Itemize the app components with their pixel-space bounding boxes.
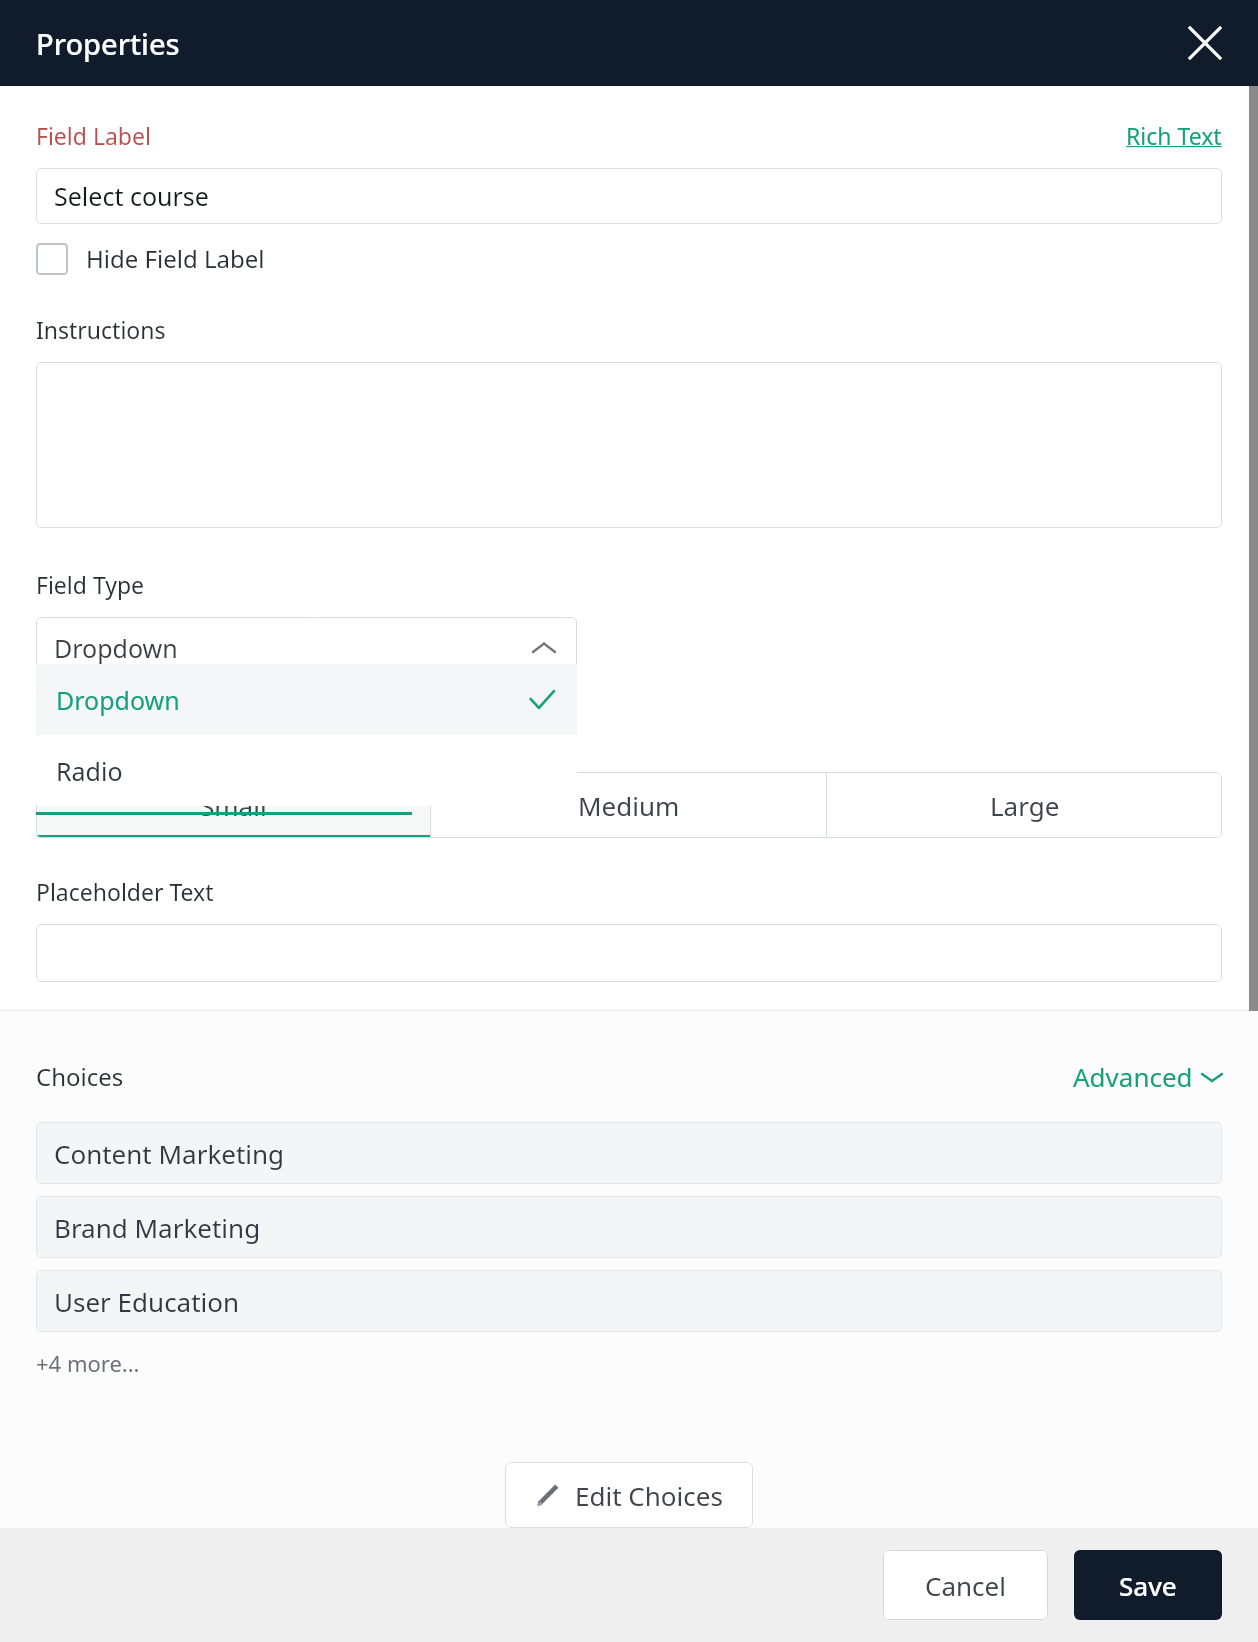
button[interactable]: Small xyxy=(36,772,430,838)
staticText: +4 more... xyxy=(36,1348,140,1378)
staticText: Dropdown xyxy=(56,683,180,717)
button[interactable] xyxy=(36,924,1222,982)
staticText: Placeholder Text xyxy=(36,876,214,907)
button[interactable]: Close xyxy=(1178,16,1232,70)
button[interactable]: User Education xyxy=(36,1270,1222,1332)
staticText: Instructions xyxy=(36,314,166,345)
staticText: Choices xyxy=(36,1060,124,1093)
staticText: Medium xyxy=(578,788,680,823)
staticText: Content Marketing xyxy=(54,1136,285,1171)
button[interactable]: Rich Text xyxy=(1126,120,1222,151)
button[interactable]: Radio xyxy=(36,735,577,806)
button[interactable]: Brand Marketing xyxy=(36,1196,1222,1258)
staticText: Rich Text xyxy=(1126,120,1222,151)
staticText: Save xyxy=(1119,1568,1177,1603)
staticText: Advanced xyxy=(1073,1059,1193,1094)
staticText: Field Label xyxy=(36,120,151,151)
staticText: Properties xyxy=(36,24,180,63)
button[interactable]: Hide Field Label xyxy=(36,242,265,275)
staticText: Select course xyxy=(54,179,209,213)
button[interactable]: Select course xyxy=(36,168,1222,224)
button[interactable]: Medium xyxy=(431,772,826,838)
staticText: Cancel xyxy=(925,1568,1006,1603)
button[interactable] xyxy=(36,362,1222,528)
staticText: Large xyxy=(990,788,1060,823)
button[interactable]: Content Marketing xyxy=(36,1122,1222,1184)
button[interactable]: Edit Choices xyxy=(505,1462,753,1528)
button[interactable]: Large xyxy=(827,772,1222,838)
staticText: Field Type xyxy=(36,569,145,600)
staticText: Radio xyxy=(56,754,123,788)
staticText: Brand Marketing xyxy=(54,1210,261,1245)
button[interactable]: Advanced xyxy=(1073,1059,1222,1094)
staticText: User Education xyxy=(54,1284,240,1319)
staticText: Edit Choices xyxy=(575,1478,723,1513)
staticText: Dropdown xyxy=(54,631,178,665)
button[interactable]: Dropdown xyxy=(36,664,577,735)
button[interactable]: Dropdown xyxy=(36,617,577,678)
staticText: Hide Field Label xyxy=(86,242,265,275)
button[interactable]: Cancel xyxy=(883,1550,1048,1620)
button[interactable]: Save xyxy=(1074,1550,1222,1620)
staticText: Small xyxy=(200,788,267,823)
